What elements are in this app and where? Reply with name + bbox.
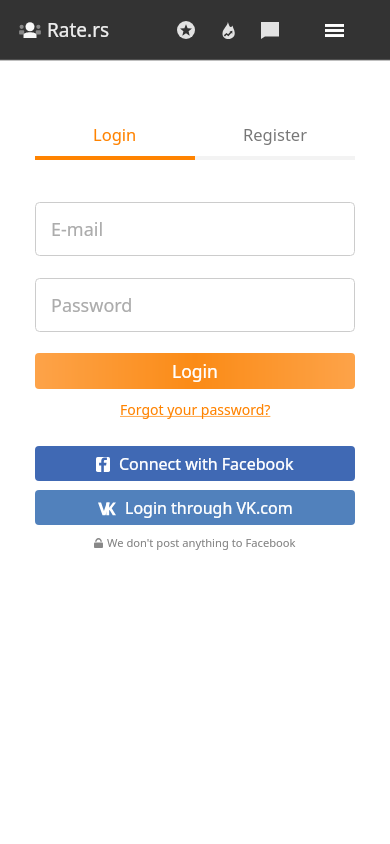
- staticText: Password: [51, 293, 133, 318]
- button[interactable]: Menu: [312, 8, 356, 52]
- button[interactable]: Login: [35, 353, 355, 389]
- staticText: E-mail: [51, 217, 104, 242]
- staticText: Register: [243, 123, 307, 145]
- button[interactable]: Login: [35, 113, 195, 155]
- button[interactable]: Messages: [252, 12, 288, 48]
- staticText: We don't post anything to Facebook: [107, 535, 296, 550]
- staticText: Login through VK.com: [125, 497, 293, 519]
- button[interactable]: Password: [35, 278, 355, 332]
- staticText: Rate.rs: [47, 17, 110, 43]
- button[interactable]: E-mail: [35, 202, 355, 256]
- button[interactable]: Top rated: [168, 12, 204, 48]
- staticText: Login: [172, 359, 218, 383]
- button[interactable]: Forgot your password?: [120, 400, 271, 419]
- button[interactable]: Login through VK.com: [35, 490, 355, 525]
- staticText: Login: [93, 123, 137, 145]
- button[interactable]: Register: [195, 113, 355, 155]
- button[interactable]: Rate.rs: [0, 0, 110, 59]
- button[interactable]: Trending: [210, 12, 246, 48]
- button[interactable]: Connect with Facebook: [35, 446, 355, 481]
- staticText: Connect with Facebook: [119, 453, 294, 475]
